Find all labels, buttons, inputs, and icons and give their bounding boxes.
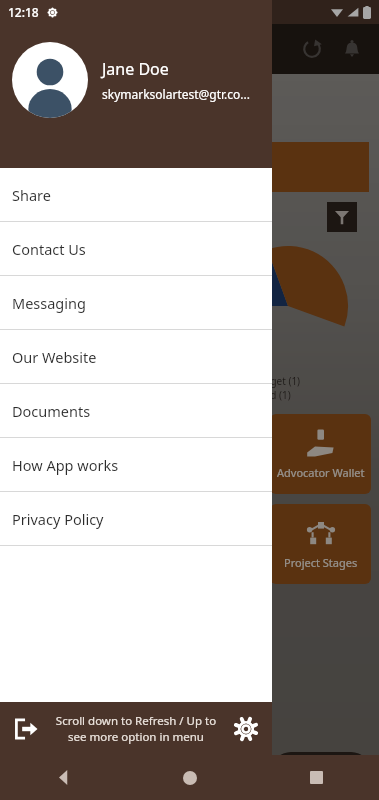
button[interactable]: Total Rewards Paid <box>10 142 369 192</box>
button[interactable]: Share <box>0 168 272 221</box>
staticText: ₹0.00 <box>24 165 63 185</box>
button[interactable]: Notifications <box>335 32 369 66</box>
button[interactable]: Advocator Wallet <box>270 414 371 494</box>
button[interactable]: Refresh <box>295 32 329 66</box>
staticText: Our Website <box>12 347 97 367</box>
staticText: Project Stages <box>284 555 358 570</box>
staticText: Paid (1) <box>256 388 291 402</box>
button[interactable]: Contact Us <box>0 222 272 275</box>
staticText: Messaging <box>12 293 86 313</box>
button[interactable]: Documents <box>0 384 272 437</box>
button[interactable]: Home <box>127 755 253 800</box>
button[interactable]: Logout <box>6 709 46 749</box>
staticText: Jane Doe <box>102 58 169 80</box>
button[interactable]: Settings <box>226 709 266 749</box>
button[interactable]: How App works <box>0 438 272 491</box>
staticText: Advocator Wallet <box>277 465 365 480</box>
staticText: skymarksolartest@gtr.co... <box>102 86 250 102</box>
button[interactable]: Recents <box>253 755 379 800</box>
staticText: Share <box>12 185 51 205</box>
button[interactable]: Messaging <box>0 276 272 329</box>
button[interactable]: Call or message <box>271 752 371 792</box>
staticText: Documents <box>12 401 91 421</box>
staticText: Privacy Policy <box>12 509 104 529</box>
staticText: How App works <box>12 455 119 475</box>
button[interactable]: Filter <box>327 202 357 232</box>
button[interactable]: Privacy Policy <box>0 492 272 545</box>
button[interactable]: Back <box>0 755 127 800</box>
staticText: Contact Us <box>12 239 86 259</box>
staticText: 12:18 <box>8 4 39 20</box>
button[interactable]: Our Website <box>0 330 272 383</box>
button[interactable]: Project Stages <box>270 504 371 584</box>
staticText: Target (1) <box>256 374 301 388</box>
staticText: Scroll down to Refresh / Up to see more … <box>46 713 226 745</box>
